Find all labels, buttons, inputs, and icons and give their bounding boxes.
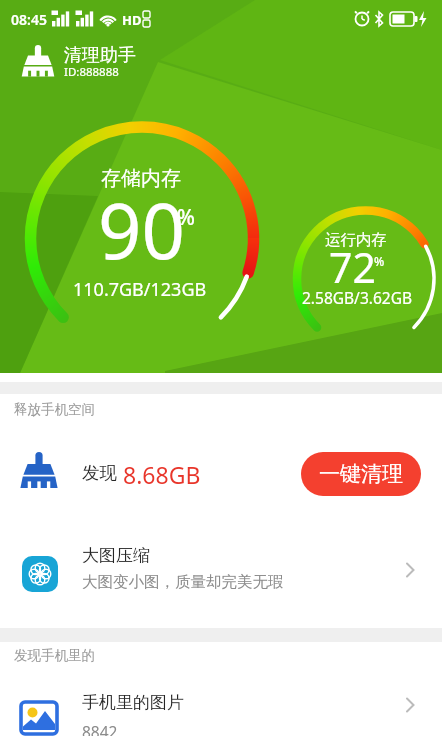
staticText: 发现: [82, 462, 117, 484]
staticText: 08:45: [11, 10, 47, 29]
staticText: 手机里的图片: [82, 692, 184, 713]
staticText: 大图压缩: [82, 545, 150, 566]
staticText: %: [374, 253, 385, 269]
button[interactable]: 一键清理: [301, 452, 421, 496]
staticText: 发现手机里的: [14, 647, 95, 664]
staticText: %: [177, 203, 195, 229]
staticText: 2.58GB/3.62GB: [302, 287, 412, 307]
staticText: ID:888888: [64, 64, 119, 80]
staticText: 释放手机空间: [14, 401, 95, 418]
staticText: 大图变小图，质量却完美无瑕: [82, 572, 284, 592]
staticText: 110.7GB/123GB: [73, 277, 207, 301]
staticText: 清理助手: [64, 44, 136, 67]
staticText: 72: [329, 239, 376, 295]
staticText: 8.68GB: [123, 459, 201, 490]
button[interactable]: [0, 30, 200, 90]
button[interactable]: [0, 425, 442, 520]
staticText: 存储内存: [101, 166, 181, 191]
button[interactable]: [0, 665, 442, 736]
staticText: 90: [98, 178, 185, 282]
staticText: 8842: [82, 721, 118, 736]
staticText: 运行内存: [325, 230, 387, 250]
button[interactable]: [0, 520, 442, 625]
staticText: HD: [122, 11, 142, 29]
staticText: 一键清理: [319, 461, 403, 487]
